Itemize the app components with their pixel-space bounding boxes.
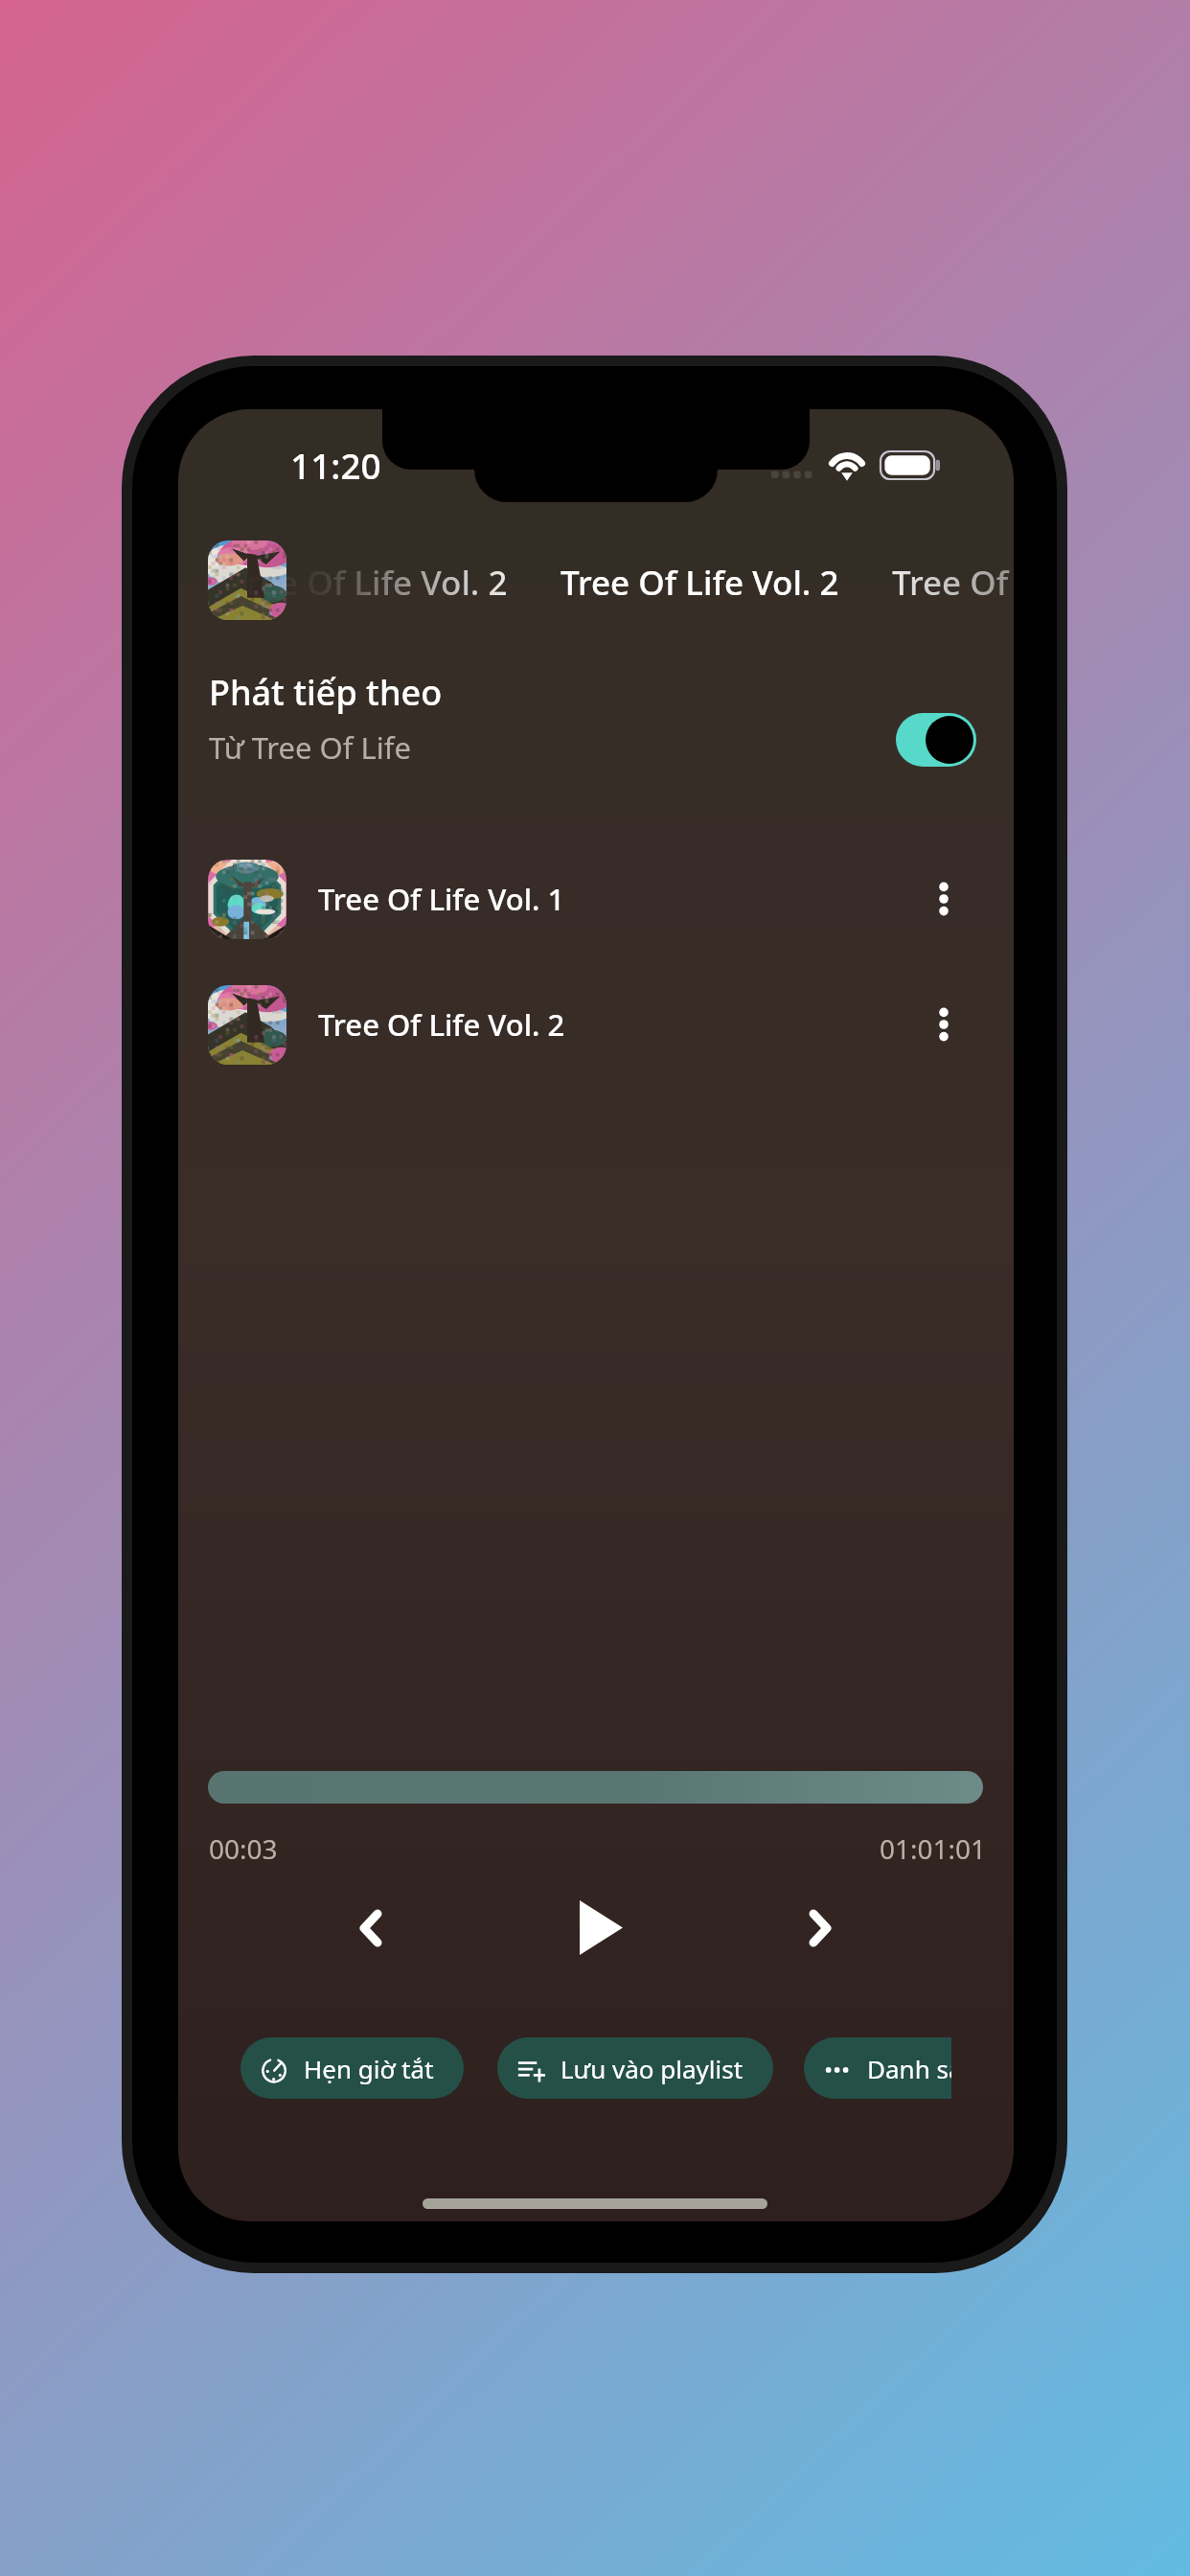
staticText: Tree Of Life Vol. 2 — [892, 560, 1014, 606]
button[interactable]: Hẹn giờ tắt — [240, 2037, 464, 2099]
button[interactable]: More options — [905, 861, 982, 937]
button[interactable]: Autoplay toggle — [896, 713, 976, 767]
staticText: Tree Of Life Vol. 2 — [318, 1004, 565, 1045]
staticText: 00:03 — [209, 1830, 278, 1867]
button[interactable]: Next — [782, 1890, 858, 1966]
staticText: Phát tiếp theo — [209, 669, 443, 716]
button[interactable]: Danh sách — [804, 2037, 951, 2099]
staticText: Danh sách — [867, 2052, 951, 2085]
staticText: Tree Of Life Vol. 1 — [318, 879, 565, 919]
staticText: Lưu vào playlist — [561, 2052, 744, 2085]
staticText: Tree Of Life Vol. 2 — [561, 560, 839, 606]
button[interactable]: Seek bar — [208, 1771, 983, 1804]
button[interactable]: Play — [559, 1879, 643, 1964]
staticText: Hẹn giờ tắt — [304, 2052, 434, 2085]
button[interactable]: More options — [905, 986, 982, 1063]
button[interactable]: Tree Of Life Vol. 2 — [178, 970, 1014, 1080]
staticText: Từ Tree Of Life — [209, 727, 411, 768]
staticText: 01:01:01 — [830, 1830, 986, 1867]
staticText: 11:20 — [290, 441, 381, 489]
button[interactable]: Previous — [332, 1890, 409, 1966]
button[interactable]: Lưu vào playlist — [497, 2037, 773, 2099]
staticText: Tree Of Life Vol. 2 — [229, 560, 508, 606]
button[interactable]: Tree Of Life Vol. 1 — [178, 844, 1014, 954]
